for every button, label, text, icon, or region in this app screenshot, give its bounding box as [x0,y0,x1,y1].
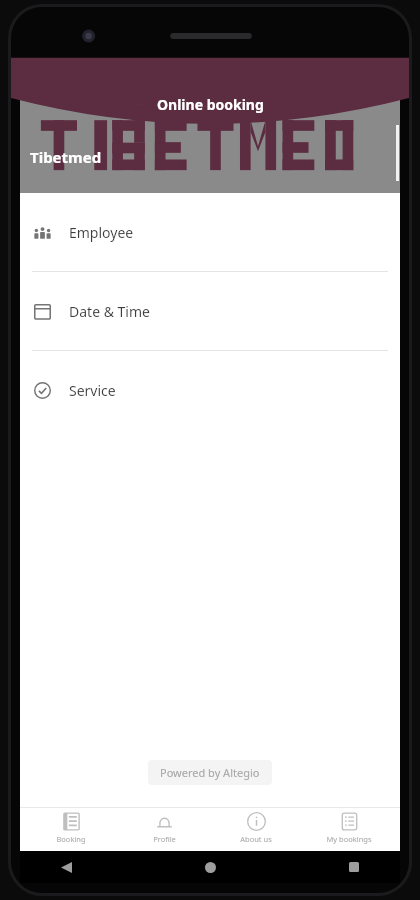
staticText: Tibetmed [30,147,102,167]
button[interactable]: Powered by Altegio [148,760,272,785]
button[interactable]: Booking [29,807,113,851]
staticText: Employee [69,223,134,242]
button[interactable]: About us [214,807,298,851]
button[interactable]: Date & Time [20,272,400,350]
button[interactable]: Back [56,857,76,877]
button[interactable]: Profile [122,807,206,851]
staticText: About us [240,834,272,844]
staticText: Powered by Altegio [160,765,260,780]
staticText: Profile [153,834,176,844]
button[interactable]: Home [200,857,220,877]
staticText: Online booking [157,95,264,114]
staticText: Service [69,381,116,400]
staticText: My bookings [326,834,372,844]
button[interactable]: Service [20,351,400,429]
staticText: Booking [56,834,86,844]
staticText: Date & Time [69,302,150,321]
button[interactable]: Recent apps [344,857,364,877]
button[interactable]: My bookings [307,807,391,851]
button[interactable]: Employee [20,193,400,271]
